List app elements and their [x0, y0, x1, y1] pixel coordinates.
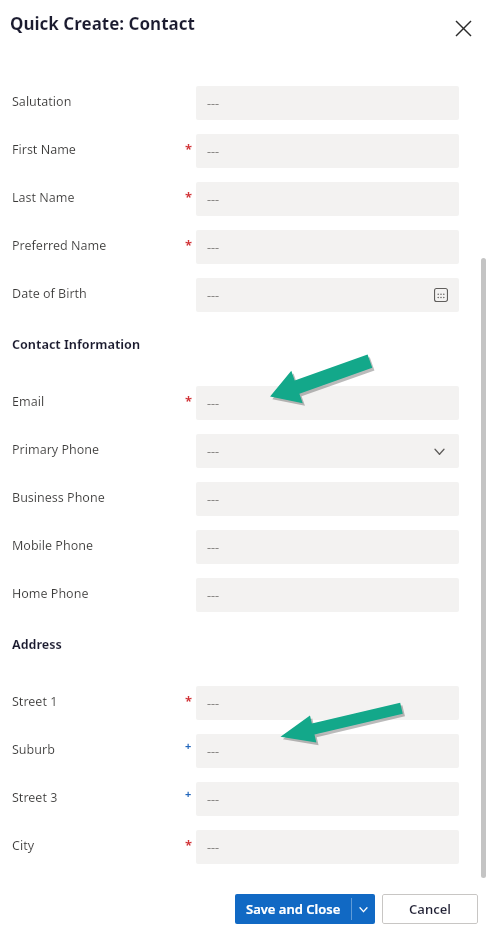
- button[interactable]: ---: [196, 734, 459, 768]
- staticText: Last Name: [12, 189, 75, 206]
- staticText: +: [185, 738, 192, 753]
- staticText: ---: [207, 839, 220, 856]
- staticText: ---: [207, 443, 220, 460]
- button[interactable]: ---: [196, 578, 459, 612]
- button[interactable]: ---: [196, 782, 459, 816]
- button[interactable]: ---: [196, 182, 459, 216]
- button[interactable]: ---: [196, 86, 459, 120]
- button[interactable]: ---: [196, 434, 459, 468]
- staticText: ---: [207, 395, 220, 412]
- staticText: Suburb: [12, 741, 55, 758]
- staticText: +: [185, 786, 192, 801]
- button[interactable]: Select date: [431, 285, 451, 305]
- staticText: ---: [207, 587, 220, 604]
- staticText: ---: [207, 491, 220, 508]
- staticText: *: [185, 836, 193, 854]
- staticText: Email: [12, 393, 45, 410]
- staticText: Save and Close: [246, 900, 341, 918]
- button[interactable]: More save options: [352, 894, 375, 924]
- staticText: *: [185, 392, 193, 410]
- staticText: ---: [207, 191, 220, 208]
- staticText: Address: [12, 636, 62, 653]
- staticText: *: [185, 140, 193, 158]
- staticText: Street 3: [12, 789, 58, 806]
- staticText: City: [12, 837, 35, 854]
- button[interactable]: Save and Close: [235, 894, 375, 924]
- staticText: ---: [207, 95, 220, 112]
- button[interactable]: ---: [196, 686, 459, 720]
- staticText: Mobile Phone: [12, 537, 93, 554]
- button[interactable]: ---: [196, 278, 459, 312]
- button[interactable]: ---: [196, 386, 459, 420]
- button[interactable]: ---: [196, 230, 459, 264]
- staticText: Home Phone: [12, 585, 89, 602]
- staticText: Primary Phone: [12, 441, 100, 458]
- staticText: ---: [207, 791, 220, 808]
- staticText: Street 1: [12, 693, 58, 710]
- staticText: ---: [207, 743, 220, 760]
- button[interactable]: Cancel: [382, 894, 478, 924]
- staticText: Quick Create: Contact: [10, 12, 195, 35]
- staticText: Business Phone: [12, 489, 105, 506]
- staticText: Contact Information: [12, 336, 141, 353]
- button[interactable]: ---: [196, 482, 459, 516]
- button[interactable]: Close: [444, 9, 482, 47]
- staticText: Salutation: [12, 93, 72, 110]
- staticText: *: [185, 692, 193, 710]
- staticText: ---: [207, 143, 220, 160]
- staticText: Cancel: [409, 900, 452, 918]
- staticText: Date of Birth: [12, 285, 87, 302]
- button[interactable]: ---: [196, 530, 459, 564]
- staticText: ---: [207, 239, 220, 256]
- staticText: *: [185, 188, 193, 206]
- staticText: ---: [207, 539, 220, 556]
- staticText: ---: [207, 695, 220, 712]
- button[interactable]: ---: [196, 830, 459, 864]
- button[interactable]: ---: [196, 134, 459, 168]
- button[interactable]: Open list: [429, 441, 449, 461]
- staticText: ---: [207, 287, 220, 304]
- staticText: First Name: [12, 141, 76, 158]
- staticText: *: [185, 236, 193, 254]
- staticText: Preferred Name: [12, 237, 107, 254]
